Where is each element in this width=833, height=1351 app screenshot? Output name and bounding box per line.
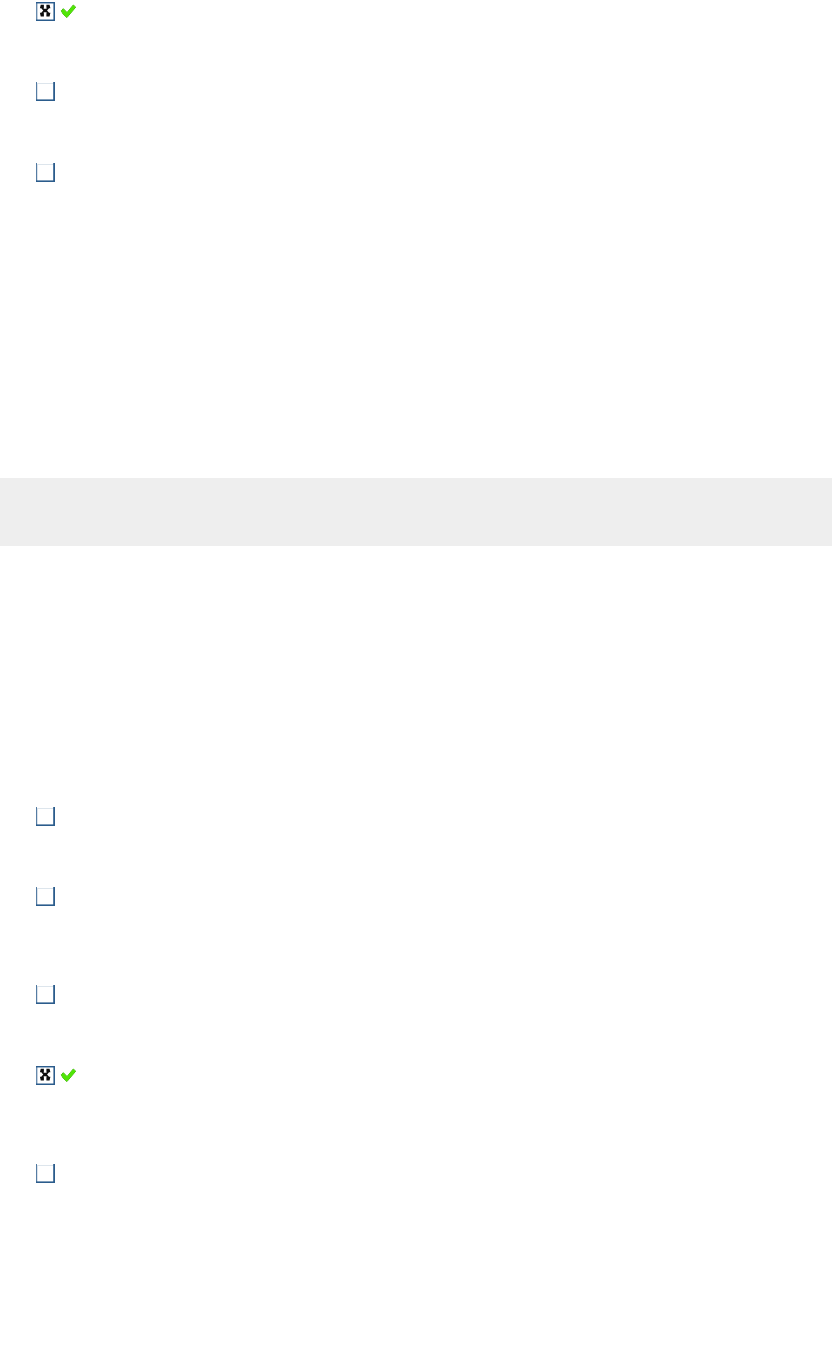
button[interactable]: Image (36, 887, 55, 906)
button[interactable]: Image (36, 82, 55, 101)
button[interactable]: Verified (61, 5, 75, 18)
button[interactable]: Image (36, 163, 55, 182)
button[interactable]: Image (36, 985, 55, 1004)
button[interactable]: Image (36, 1066, 55, 1085)
button[interactable]: Image (36, 2, 55, 21)
button[interactable]: Image (36, 1164, 55, 1183)
button[interactable]: Image (36, 807, 55, 826)
button[interactable]: Verified (61, 1069, 75, 1082)
